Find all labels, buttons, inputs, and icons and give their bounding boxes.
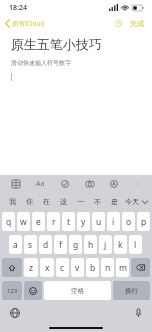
- staticText: 滑动快速输入符号数字: [11, 59, 71, 67]
- button[interactable]: s: [24, 235, 37, 254]
- staticText: l: [134, 239, 137, 251]
- button[interactable]: Table: [10, 178, 22, 190]
- staticText: 在: [43, 197, 50, 206]
- staticText: h: [88, 239, 94, 251]
- staticText: 不: [94, 197, 101, 206]
- staticText: 我: [9, 197, 16, 206]
- button[interactable]: 空格: [44, 281, 111, 300]
- staticText: w: [20, 216, 27, 228]
- staticText: o: [126, 216, 132, 228]
- button[interactable]: Change keyboard: [8, 306, 22, 320]
- button[interactable]: Emoji: [24, 281, 42, 300]
- button[interactable]: 在: [38, 193, 55, 210]
- button[interactable]: z: [24, 258, 38, 277]
- button[interactable]: a: [9, 235, 22, 254]
- button[interactable]: 所有iCloud: [0, 17, 51, 30]
- button[interactable]: 今天: [123, 193, 140, 210]
- button[interactable]: o: [122, 212, 135, 231]
- staticText: g: [73, 239, 79, 251]
- staticText: r: [52, 216, 56, 228]
- staticText: 你: [26, 197, 33, 206]
- button[interactable]: w: [17, 212, 30, 231]
- staticText: 是: [111, 197, 118, 206]
- button[interactable]: t: [62, 212, 75, 231]
- staticText: 一: [77, 197, 84, 206]
- button[interactable]: i: [107, 212, 120, 231]
- staticText: d: [43, 239, 49, 251]
- staticText: Aa: [36, 179, 45, 189]
- button[interactable]: 完成: [127, 17, 147, 30]
- button[interactable]: h: [84, 235, 97, 254]
- staticText: 18:24: [9, 3, 27, 13]
- button[interactable]: Camera: [84, 178, 96, 190]
- staticText: j: [104, 239, 107, 251]
- button[interactable]: u: [92, 212, 105, 231]
- staticText: 原生五笔小技巧: [11, 36, 102, 52]
- staticText: n: [105, 262, 111, 274]
- button[interactable]: 一: [72, 193, 89, 210]
- button[interactable]: 123: [2, 281, 22, 300]
- button[interactable]: Close: [132, 179, 142, 189]
- button[interactable]: Markup: [108, 178, 120, 190]
- button[interactable]: d: [39, 235, 52, 254]
- staticText: 今天: [125, 197, 139, 206]
- staticText: t: [67, 216, 71, 228]
- button[interactable]: Share: [112, 17, 125, 30]
- staticText: 这: [60, 197, 67, 206]
- button[interactable]: p: [137, 212, 150, 231]
- staticText: v: [75, 262, 80, 274]
- button[interactable]: Aa: [34, 177, 47, 191]
- button[interactable]: b: [86, 258, 99, 277]
- button[interactable]: 这: [55, 193, 72, 210]
- button[interactable]: Shift: [2, 258, 22, 277]
- staticText: c: [60, 262, 65, 274]
- button[interactable]: 不: [89, 193, 106, 210]
- button[interactable]: q: [2, 212, 15, 231]
- button[interactable]: 我: [4, 193, 21, 210]
- staticText: e: [36, 216, 41, 228]
- staticText: 完成: [130, 19, 144, 28]
- button[interactable]: y: [77, 212, 90, 231]
- button[interactable]: n: [101, 258, 114, 277]
- button[interactable]: f: [54, 235, 67, 254]
- staticText: 空格: [71, 287, 84, 295]
- button[interactable]: g: [69, 235, 82, 254]
- staticText: 123: [7, 287, 18, 295]
- staticText: q: [6, 216, 12, 228]
- button[interactable]: 你: [21, 193, 38, 210]
- staticText: y: [81, 216, 86, 228]
- staticText: 所有iCloud: [12, 19, 45, 28]
- button[interactable]: x: [40, 258, 54, 277]
- button[interactable]: r: [47, 212, 60, 231]
- button[interactable]: c: [56, 258, 69, 277]
- staticText: 换行: [125, 287, 138, 295]
- button[interactable]: l: [129, 235, 142, 254]
- staticText: k: [118, 239, 123, 251]
- staticText: s: [28, 239, 33, 251]
- button[interactable]: Checklist: [59, 178, 71, 190]
- button[interactable]: Delete: [131, 258, 150, 277]
- staticText: i: [112, 216, 115, 228]
- staticText: z: [29, 262, 33, 274]
- staticText: m: [119, 262, 127, 274]
- button[interactable]: k: [114, 235, 127, 254]
- staticText: x: [45, 262, 50, 274]
- button[interactable]: 换行: [113, 281, 150, 300]
- button[interactable]: 是: [106, 193, 123, 210]
- staticText: u: [96, 216, 102, 228]
- staticText: b: [90, 262, 96, 274]
- button[interactable]: Dictation: [133, 306, 144, 320]
- staticText: a: [13, 239, 18, 251]
- staticText: f: [59, 239, 62, 251]
- button[interactable]: v: [71, 258, 84, 277]
- button[interactable]: m: [116, 258, 129, 277]
- staticText: p: [141, 216, 147, 228]
- button[interactable]: e: [32, 212, 45, 231]
- button[interactable]: j: [99, 235, 112, 254]
- button[interactable]: More candidates: [140, 193, 150, 210]
